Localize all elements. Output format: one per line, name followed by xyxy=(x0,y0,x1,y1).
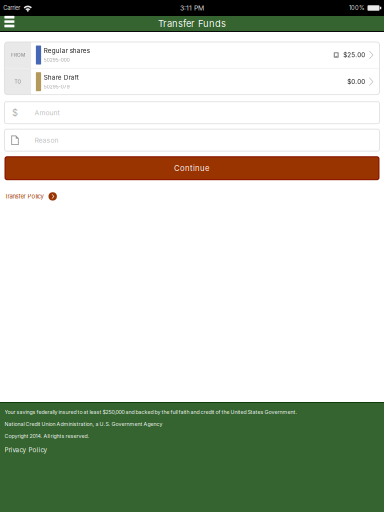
button[interactable]: TO xyxy=(4,69,379,95)
staticText: 50295-000 xyxy=(44,57,70,63)
staticText: National Credit Union Administration, a … xyxy=(4,421,162,427)
staticText: Share Draft xyxy=(44,74,79,81)
staticText: Privacy Policy xyxy=(4,446,47,454)
button[interactable]: Menu xyxy=(0,16,19,31)
button[interactable]: Transfer Policy xyxy=(4,192,57,201)
staticText: Transfer Funds xyxy=(158,18,226,29)
staticText: 3:11 PM xyxy=(180,4,204,12)
staticText: Continue xyxy=(174,163,210,173)
button[interactable]: Privacy Policy xyxy=(0,446,47,454)
staticText: $25.00 xyxy=(343,51,365,59)
staticText: Your savings federally insured to at lea… xyxy=(4,409,297,415)
button[interactable]: Continue xyxy=(4,156,379,180)
staticText: TO xyxy=(14,79,21,85)
staticText: 50295-079 xyxy=(44,84,70,90)
staticText: Reason xyxy=(34,136,58,144)
staticText: Regular shares xyxy=(44,47,90,55)
staticText: Amount xyxy=(34,109,59,117)
staticText: $ xyxy=(12,107,18,118)
staticText: Carrier xyxy=(3,4,20,11)
staticText: Copyright 2014. All rights reserved. xyxy=(4,433,89,439)
staticText: Transfer Policy xyxy=(4,193,43,200)
staticText: FROM xyxy=(11,52,25,58)
button[interactable]: FROM xyxy=(4,42,379,68)
staticText: 100% xyxy=(349,4,365,11)
staticText: $0.00 xyxy=(347,78,365,85)
